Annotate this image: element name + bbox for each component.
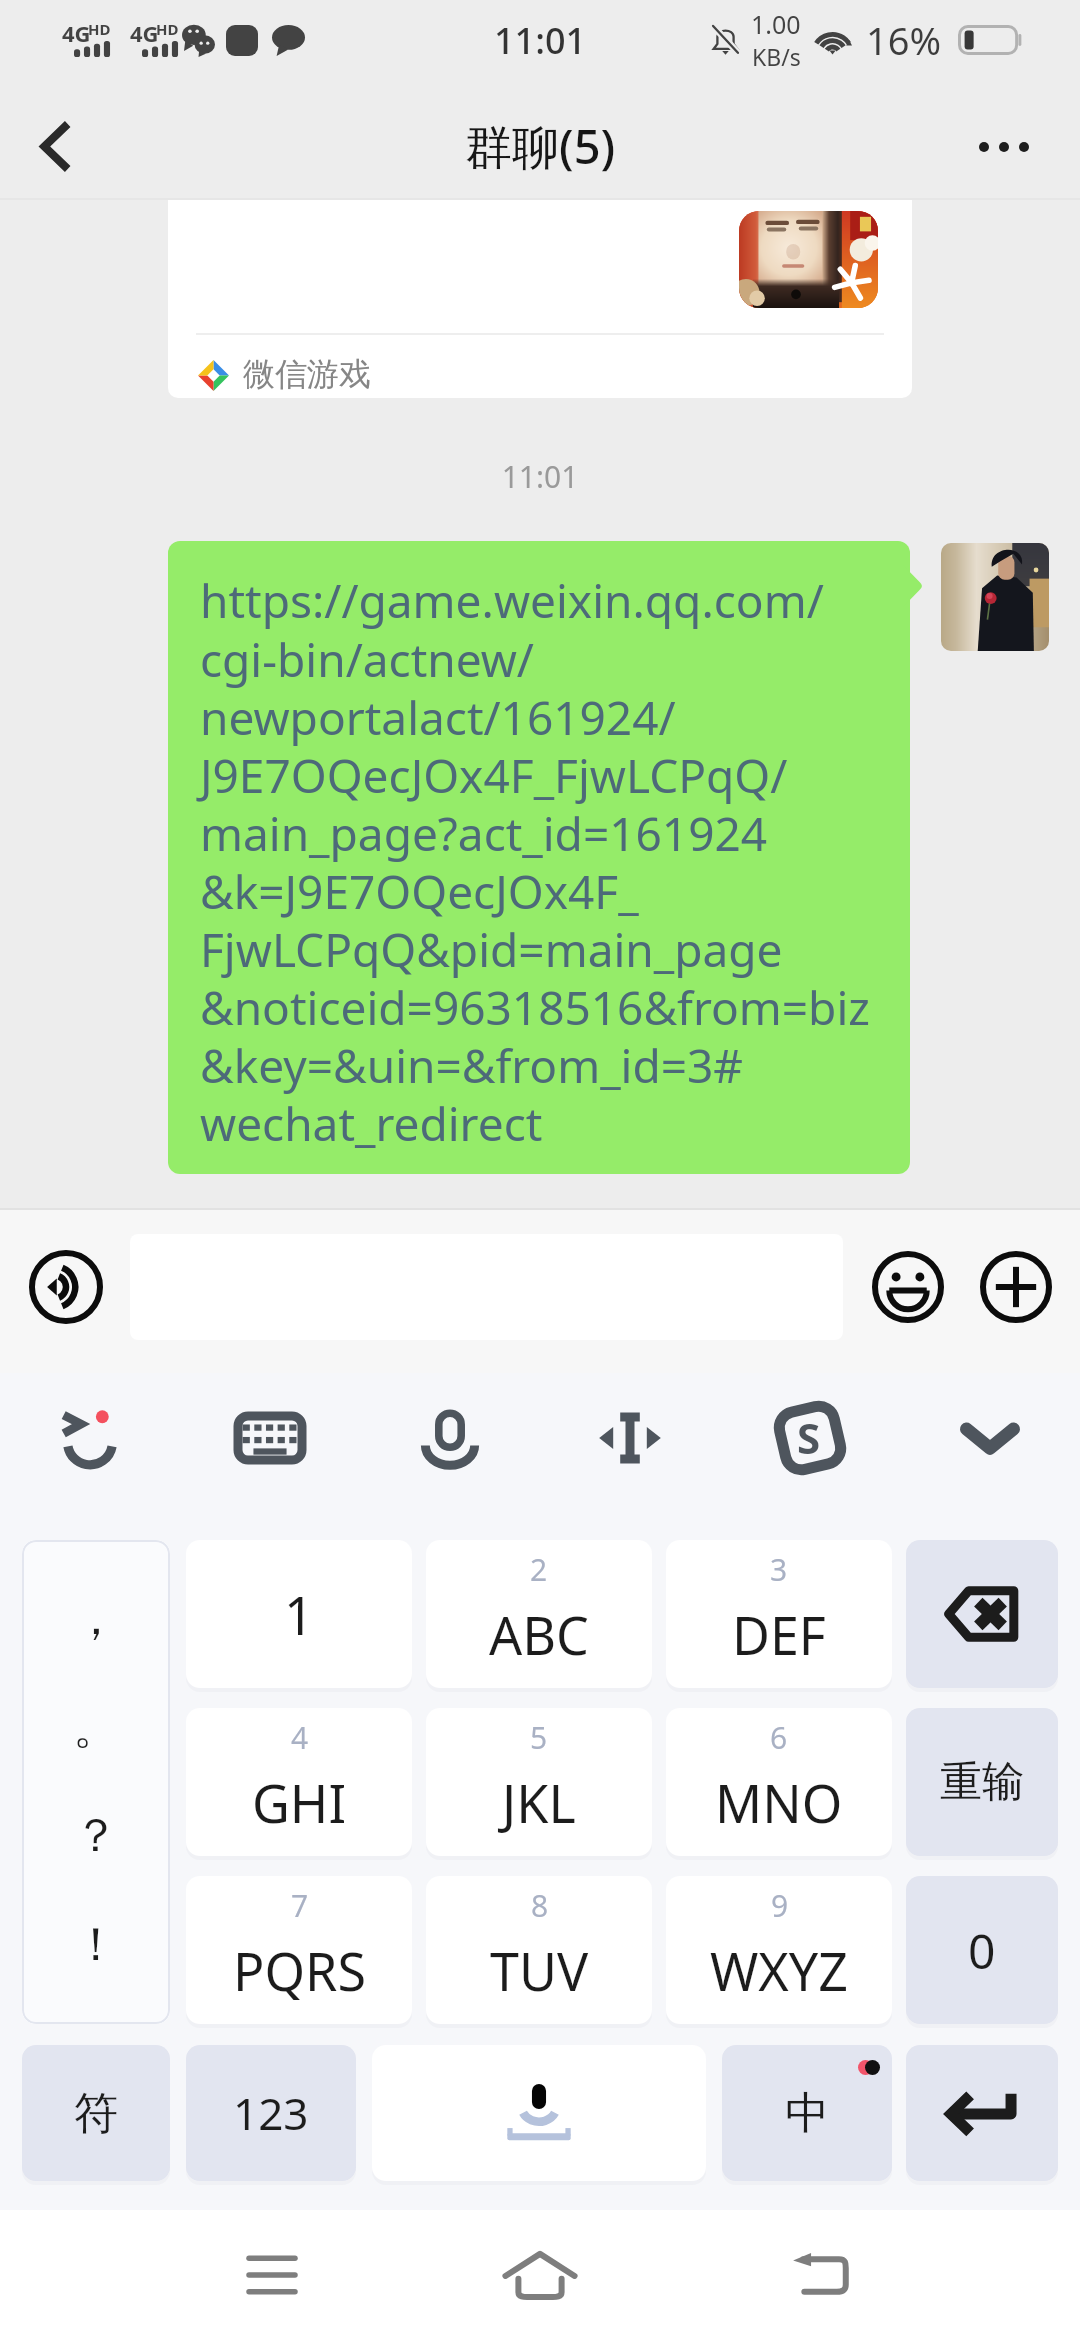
- button[interactable]: Voice input: [360, 1373, 540, 1503]
- button[interactable]: 3: [666, 1540, 892, 1688]
- button[interactable]: 9: [666, 1876, 892, 2024]
- staticText: 微信游戏: [243, 354, 371, 394]
- staticText: S: [797, 1409, 821, 1466]
- staticText: 1: [284, 1579, 314, 1650]
- staticText: 符: [74, 2086, 118, 2141]
- button[interactable]: 微信游戏: [168, 200, 912, 398]
- staticText: 。: [73, 1699, 119, 1757]
- button[interactable]: 1: [186, 1540, 412, 1688]
- button[interactable]: More options: [952, 88, 1080, 198]
- staticText: ，: [73, 1590, 119, 1648]
- button[interactable]: Sender avatar: [941, 543, 1049, 651]
- button[interactable]: Cursor: [540, 1373, 720, 1503]
- button[interactable]: Keyboard layout: [180, 1373, 360, 1503]
- staticText: JKL: [502, 1767, 576, 1838]
- staticText: KB/s: [752, 41, 801, 72]
- button[interactable]: https://game.weixin.qq.com/ cgi-bin/actn…: [168, 541, 910, 1174]
- staticText: HD: [88, 19, 111, 39]
- staticText: 重输: [940, 1756, 1024, 1809]
- button[interactable]: 符: [22, 2045, 170, 2181]
- staticText: 群聊(5): [465, 114, 616, 178]
- staticText: 11:01: [0, 456, 1080, 497]
- button[interactable]: 重输: [906, 1708, 1058, 1856]
- staticText: GHI: [252, 1767, 347, 1838]
- button[interactable]: Recent apps: [212, 2230, 332, 2320]
- button[interactable]: 中: [722, 2045, 892, 2181]
- button[interactable]: 8: [426, 1876, 652, 2024]
- button[interactable]: 6: [666, 1708, 892, 1856]
- button[interactable]: More functions: [968, 1239, 1064, 1335]
- button[interactable]: 0: [906, 1876, 1058, 2024]
- staticText: 16%: [866, 14, 942, 66]
- staticText: 0: [968, 1918, 996, 1983]
- staticText: HD: [156, 19, 179, 39]
- button[interactable]: Hide keyboard: [900, 1373, 1080, 1503]
- staticText: MNO: [715, 1767, 843, 1838]
- button[interactable]: Emoji: [860, 1239, 956, 1335]
- staticText: ABC: [489, 1599, 589, 1670]
- button[interactable]: Backspace: [906, 1540, 1058, 1688]
- button[interactable]: Punctuation: [22, 1540, 170, 2024]
- button[interactable]: Home: [480, 2230, 600, 2320]
- staticText: https://game.weixin.qq.com/ cgi-bin/actn…: [200, 569, 870, 1154]
- staticText: PQRS: [233, 1935, 366, 2006]
- button[interactable]: Voice input: [372, 2045, 706, 2181]
- staticText: 4G: [130, 18, 159, 48]
- staticText: 中: [785, 2086, 829, 2141]
- staticText: 4G: [62, 18, 91, 48]
- staticText: WXYZ: [710, 1935, 849, 2006]
- staticText: DEF: [732, 1599, 826, 1670]
- staticText: 1.00: [751, 7, 801, 41]
- button[interactable]: Enter: [906, 2045, 1058, 2181]
- button[interactable]: Back: [0, 88, 112, 198]
- staticText: TUV: [490, 1935, 589, 2006]
- staticText: ？: [73, 1807, 119, 1865]
- staticText: 9: [771, 1885, 789, 1926]
- staticText: 6: [770, 1717, 788, 1758]
- staticText: 4: [291, 1717, 309, 1758]
- button[interactable]: Voice input: [18, 1239, 114, 1335]
- button[interactable]: Back: [760, 2230, 880, 2320]
- button[interactable]: Settings: [0, 1373, 180, 1503]
- staticText: 2: [530, 1549, 548, 1590]
- staticText: 3: [770, 1549, 788, 1590]
- button[interactable]: 5: [426, 1708, 652, 1856]
- button[interactable]: 7: [186, 1876, 412, 2024]
- button[interactable]: 123: [186, 2045, 356, 2181]
- staticText: 123: [233, 2083, 309, 2143]
- staticText: 11:01: [494, 16, 587, 65]
- button[interactable]: 4: [186, 1708, 412, 1856]
- button[interactable]: 2: [426, 1540, 652, 1688]
- staticText: 8: [531, 1885, 549, 1926]
- staticText: 5: [530, 1717, 548, 1758]
- staticText: 7: [291, 1885, 309, 1926]
- staticText: ！: [73, 1916, 119, 1974]
- button[interactable]: Sogou: [720, 1373, 900, 1503]
